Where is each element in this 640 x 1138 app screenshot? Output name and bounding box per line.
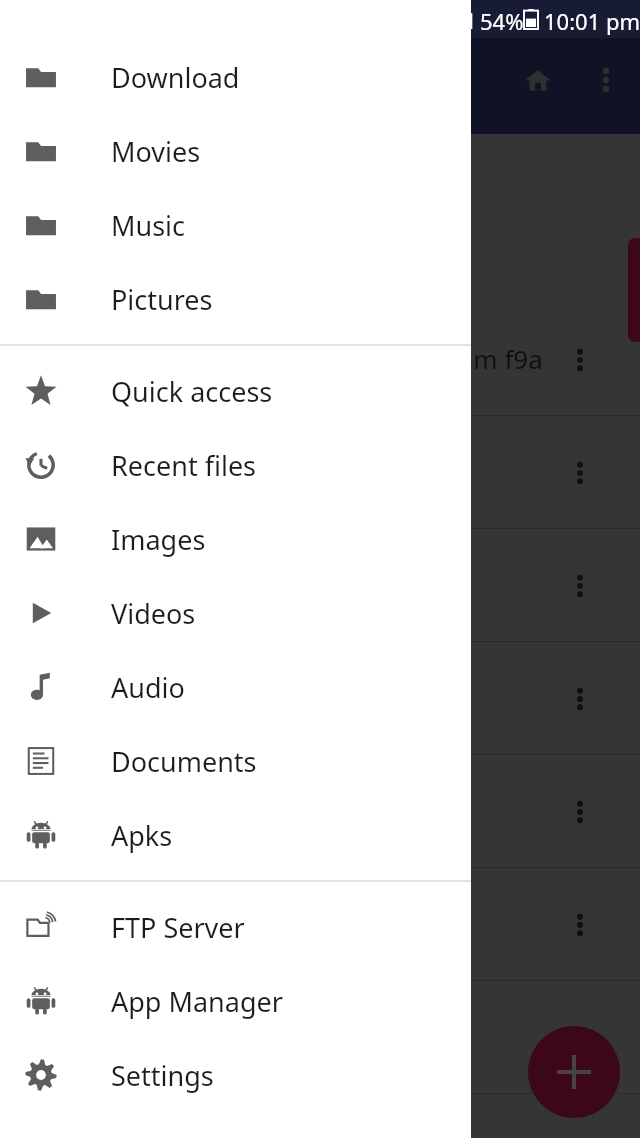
button[interactable]: App Manager (0, 964, 471, 1038)
button[interactable]: Apks (0, 798, 471, 872)
button[interactable]: Item menu (0, 868, 640, 981)
button[interactable]: Quick access (0, 354, 471, 428)
button[interactable]: Item menu (558, 451, 602, 495)
button[interactable]: Download (0, 40, 471, 114)
button[interactable]: Item menu (0, 755, 640, 868)
button[interactable]: Pictures (0, 262, 471, 336)
button[interactable]: album f9a (0, 303, 640, 416)
staticText: Apks (111, 817, 173, 854)
button[interactable]: FTP Server (0, 890, 471, 964)
staticText: App Manager (111, 983, 283, 1020)
staticText: Pictures (111, 281, 213, 318)
button[interactable]: Item menu (558, 564, 602, 608)
button[interactable]: Item menu (558, 903, 602, 947)
button[interactable]: Recent files (0, 428, 471, 502)
staticText: Documents (111, 743, 257, 780)
staticText: Recent files (111, 447, 257, 484)
staticText: Quick access (111, 373, 273, 410)
staticText: Settings (111, 1057, 214, 1094)
staticText: 10:01 pm (544, 6, 640, 36)
staticText: FTP Server (111, 909, 245, 946)
staticText: album f9a (420, 341, 543, 376)
button[interactable]: Videos (0, 576, 471, 650)
button[interactable]: Item menu (558, 790, 602, 834)
staticText: Images (111, 521, 206, 558)
staticText: 54% (480, 6, 524, 36)
button[interactable]: Home (516, 58, 560, 102)
button[interactable]: Item menu (0, 529, 640, 642)
button[interactable]: Item menu (0, 981, 640, 1094)
button[interactable]: Item menu (0, 642, 640, 755)
staticText: Movies (111, 133, 201, 170)
staticText: Music (111, 207, 186, 244)
button[interactable]: Documents (0, 724, 471, 798)
button[interactable]: Movies (0, 114, 471, 188)
button[interactable]: Add (528, 1026, 620, 1118)
button[interactable]: Item menu (558, 1016, 602, 1060)
button[interactable]: Item menu (0, 416, 640, 529)
button[interactable]: Settings (0, 1038, 471, 1112)
button[interactable]: More options (584, 58, 628, 102)
staticText: Audio (111, 669, 185, 706)
button[interactable]: Images (0, 502, 471, 576)
staticText: Download (111, 59, 240, 96)
button[interactable]: Audio (0, 650, 471, 724)
button[interactable]: Item menu (558, 677, 602, 721)
staticText: Videos (111, 595, 196, 632)
button[interactable]: Music (0, 188, 471, 262)
button[interactable]: Item menu (558, 338, 602, 382)
